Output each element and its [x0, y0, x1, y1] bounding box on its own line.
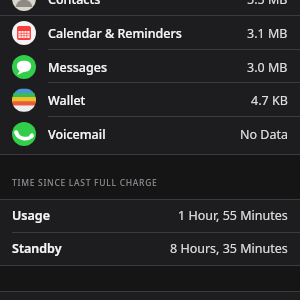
other: Voicemail: [12, 122, 36, 146]
other: Wallet: [12, 88, 36, 112]
staticText: TIME SINCE LAST FULL CHARGE: [12, 177, 158, 189]
button[interactable]: Contacts: [0, 0, 300, 16]
other: Messages: [12, 55, 36, 79]
staticText: Voicemail: [48, 126, 106, 143]
staticText: 5.5 MB: [247, 0, 288, 8]
button[interactable]: Voicemail: [0, 117, 300, 151]
button[interactable]: Usage: [0, 199, 300, 232]
staticText: 3.0 MB: [247, 59, 288, 76]
other: Calendar and Reminders: [12, 21, 36, 45]
button[interactable]: Standby: [0, 232, 300, 265]
staticText: 8 Hours, 35 Minutes: [170, 240, 288, 257]
button[interactable]: Messages: [0, 50, 300, 84]
staticText: Wallet: [48, 92, 86, 109]
staticText: Usage: [12, 207, 50, 224]
button[interactable]: Calendar and Reminders: [0, 16, 300, 50]
staticText: Calendar & Reminders: [48, 25, 182, 42]
other: Contacts: [12, 0, 36, 11]
staticText: Contacts: [48, 0, 101, 8]
staticText: Messages: [48, 59, 107, 76]
staticText: No Data: [240, 126, 288, 143]
button[interactable]: Wallet: [0, 83, 300, 117]
staticText: Standby: [12, 240, 62, 257]
staticText: 1 Hour, 55 Minutes: [178, 207, 288, 224]
staticText: 3.1 MB: [247, 25, 288, 42]
staticText: 4.7 KB: [251, 92, 288, 109]
